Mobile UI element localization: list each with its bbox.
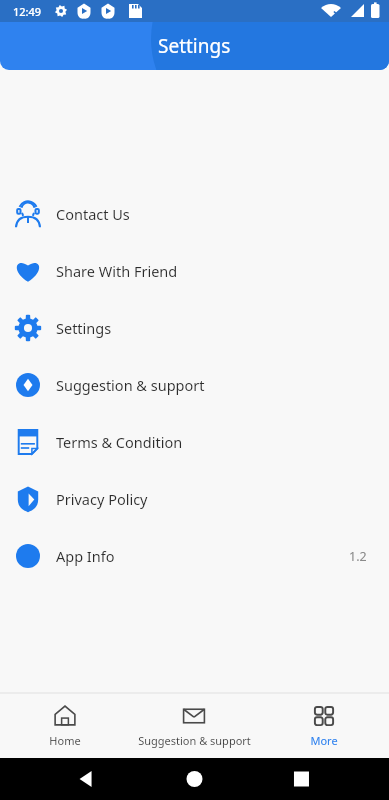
staticText: App Info bbox=[56, 546, 349, 566]
button[interactable]: Privacy Policy bbox=[0, 481, 389, 517]
button[interactable]: More bbox=[259, 693, 389, 758]
button[interactable]: Contact Us bbox=[0, 196, 389, 232]
staticText: Contact Us bbox=[56, 204, 389, 224]
button[interactable]: Settings bbox=[0, 310, 389, 346]
staticText: Terms & Condition bbox=[56, 432, 389, 452]
staticText: More bbox=[310, 733, 338, 748]
staticText: Settings bbox=[158, 33, 231, 59]
staticText: Home bbox=[49, 733, 81, 748]
button[interactable]: Home bbox=[0, 693, 129, 758]
button[interactable]: Suggestion & support bbox=[0, 367, 389, 403]
staticText: 1.2 bbox=[349, 548, 367, 565]
button[interactable]: Suggestion & support bbox=[129, 693, 259, 758]
staticText: Share With Friend bbox=[56, 261, 389, 281]
button[interactable]: Terms & Condition bbox=[0, 424, 389, 460]
button[interactable]: Share With Friend bbox=[0, 253, 389, 289]
staticText: 12:49 bbox=[13, 4, 42, 19]
staticText: Settings bbox=[56, 318, 389, 338]
button[interactable]: App Info bbox=[0, 538, 389, 574]
staticText: Suggestion & support bbox=[56, 375, 389, 395]
staticText: Suggestion & support bbox=[138, 733, 251, 748]
staticText: Privacy Policy bbox=[56, 489, 389, 509]
